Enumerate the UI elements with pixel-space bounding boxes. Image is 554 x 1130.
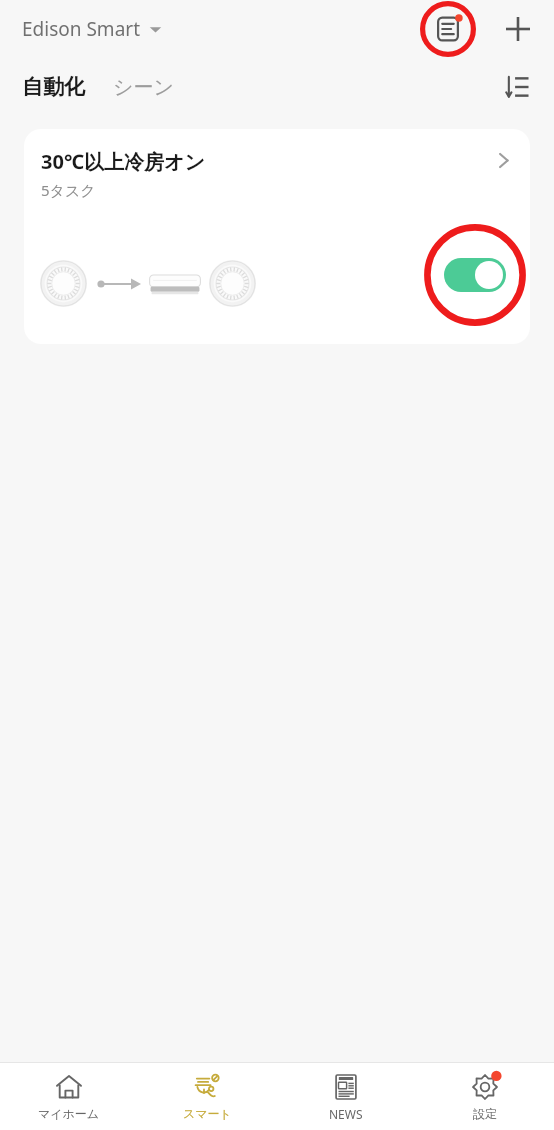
staticText: 5タスク <box>41 180 96 200</box>
button[interactable]: NEWS <box>276 1063 415 1122</box>
staticText: 30℃以上冷房オン <box>41 148 205 175</box>
button[interactable]: Sort <box>494 64 540 110</box>
staticText: Edison Smart <box>22 16 140 42</box>
staticText: 自動化 <box>22 74 85 100</box>
staticText: NEWS <box>329 1106 363 1122</box>
button[interactable]: 30℃以上冷房オン <box>24 129 530 344</box>
button[interactable]: Edison Smart <box>20 10 164 48</box>
staticText: シーン <box>113 75 174 100</box>
button[interactable]: Add <box>494 5 542 53</box>
button[interactable]: シーン <box>109 69 178 106</box>
button[interactable]: スマート <box>138 1063 276 1121</box>
staticText: マイホーム <box>38 1106 100 1121</box>
button[interactable]: 設定 <box>415 1063 554 1121</box>
button[interactable]: Logs <box>420 1 476 57</box>
button[interactable]: マイホーム <box>0 1063 138 1121</box>
staticText: スマート <box>183 1106 232 1121</box>
button[interactable]: Automation enabled <box>444 258 506 292</box>
button[interactable]: Open automation <box>482 139 524 181</box>
staticText: 設定 <box>473 1106 497 1121</box>
button[interactable]: 自動化 <box>18 68 89 106</box>
